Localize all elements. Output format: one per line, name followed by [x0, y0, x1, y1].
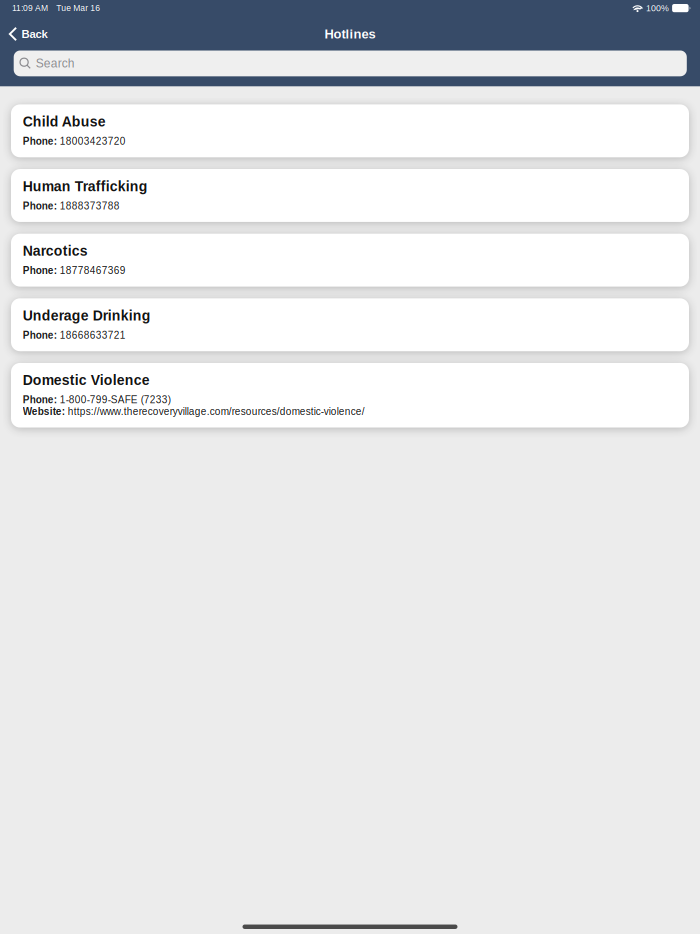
button[interactable]: Child Abuse: [11, 104, 689, 157]
staticText: Website: https://www.therecoveryvillage.…: [23, 406, 365, 417]
staticText: Hotlines: [324, 27, 375, 41]
button[interactable]: Underage Drinking: [11, 298, 689, 351]
button[interactable]: Narcotics: [11, 234, 689, 287]
staticText: 11:09 AM: [12, 3, 48, 13]
staticText: Phone: 1888373788: [23, 200, 120, 211]
staticText: Underage Drinking: [23, 308, 151, 323]
staticText: Domestic Violence: [23, 372, 150, 388]
staticText: Phone: 18778467369: [23, 265, 126, 276]
button[interactable]: Search: [14, 50, 687, 76]
button[interactable]: Domestic Violence: [11, 363, 689, 427]
staticText: Back: [21, 28, 47, 40]
staticText: Search: [36, 57, 75, 70]
staticText: Phone: 18003423720: [23, 136, 126, 147]
button[interactable]: Human Trafficking: [11, 169, 689, 222]
staticText: 100%: [646, 3, 669, 13]
staticText: Human Trafficking: [23, 178, 148, 194]
button[interactable]: Back: [0, 21, 57, 47]
staticText: Phone: 18668633721: [23, 330, 126, 341]
staticText: Narcotics: [23, 243, 88, 259]
staticText: Tue Mar 16: [56, 3, 100, 13]
staticText: Phone: 1-800-799-SAFE (7233): [23, 394, 171, 405]
staticText: Child Abuse: [23, 114, 106, 129]
